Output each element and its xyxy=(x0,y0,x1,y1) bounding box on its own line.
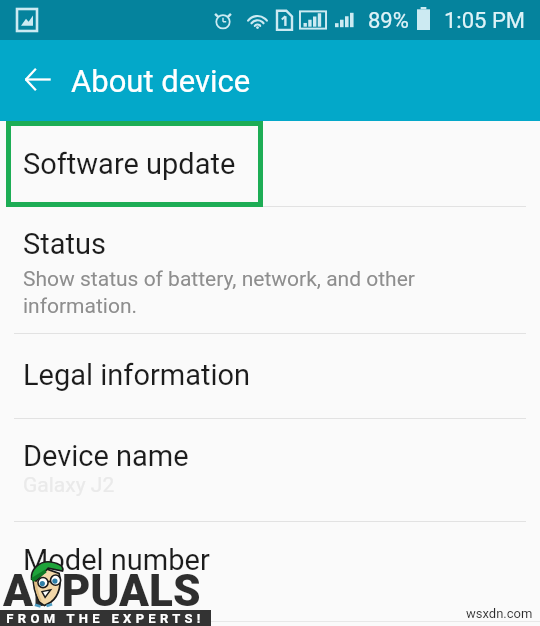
button[interactable]: Software update xyxy=(0,121,540,206)
staticText: APPUALS xyxy=(3,565,201,617)
staticText: Status xyxy=(23,227,106,261)
staticText: Model number xyxy=(23,543,210,577)
staticText: Galaxy J2 xyxy=(23,473,115,498)
staticText: Legal information xyxy=(23,358,251,392)
staticText: wsxdn.com xyxy=(466,606,533,621)
staticText: About device xyxy=(71,63,251,99)
staticText: Show status of battery, network, and oth… xyxy=(23,267,415,318)
staticText: FROM THE EXPERTS! xyxy=(6,611,205,626)
button[interactable]: Legal information xyxy=(0,333,540,418)
staticText: Device name xyxy=(23,439,189,473)
button[interactable]: Model number xyxy=(0,521,540,626)
staticText: Software update xyxy=(23,147,236,181)
button[interactable]: Navigate back xyxy=(16,58,58,100)
staticText: 1:05 PM xyxy=(444,8,525,34)
button[interactable]: Device name xyxy=(0,418,540,521)
staticText: 89% xyxy=(368,8,409,34)
button[interactable]: Status xyxy=(0,206,540,333)
